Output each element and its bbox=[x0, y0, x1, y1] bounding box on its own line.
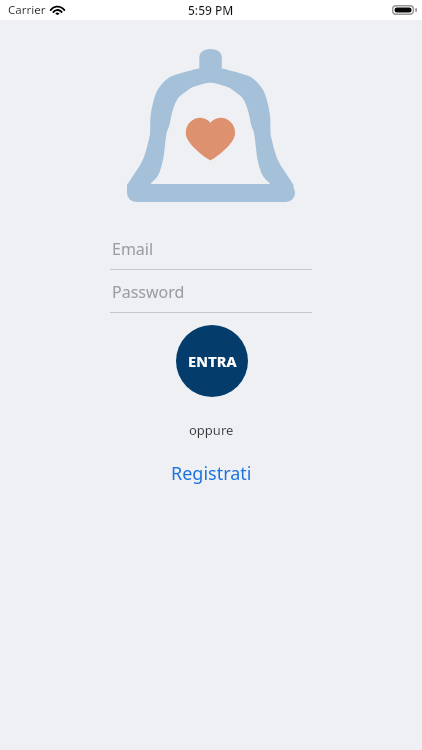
staticText: Email bbox=[112, 238, 154, 260]
staticText: Password bbox=[112, 281, 185, 303]
button[interactable]: Email bbox=[110, 238, 312, 270]
staticText: ENTRA bbox=[188, 351, 237, 371]
button[interactable]: Password bbox=[110, 281, 312, 313]
other: Battery full bbox=[392, 5, 417, 15]
button[interactable]: Registrati bbox=[161, 458, 262, 489]
staticText: 5:59 PM bbox=[188, 2, 234, 18]
staticText: Registrati bbox=[171, 461, 252, 486]
button[interactable]: ENTRA bbox=[176, 325, 248, 397]
staticText: oppure bbox=[189, 421, 234, 439]
staticText: Carrier bbox=[8, 2, 46, 18]
other: Wi-Fi bbox=[49, 5, 66, 16]
